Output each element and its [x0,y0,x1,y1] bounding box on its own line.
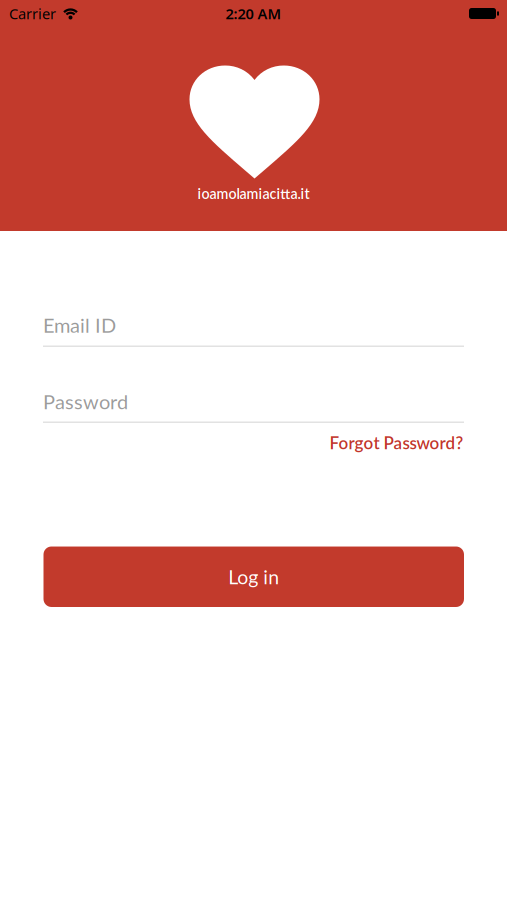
staticText: Password [43,389,128,413]
button[interactable]: Password [43,390,464,422]
staticText: Log in [228,565,279,588]
staticText: Forgot Password? [329,432,463,453]
staticText: Email ID [43,313,116,337]
staticText: ioamolamiacitta.it [197,185,309,202]
staticText: Carrier [9,4,56,23]
button[interactable]: Log in [43,546,464,607]
button[interactable]: Forgot Password? [329,432,463,453]
button[interactable]: Email ID [43,313,464,347]
staticText: 2:20 AM [225,4,281,23]
